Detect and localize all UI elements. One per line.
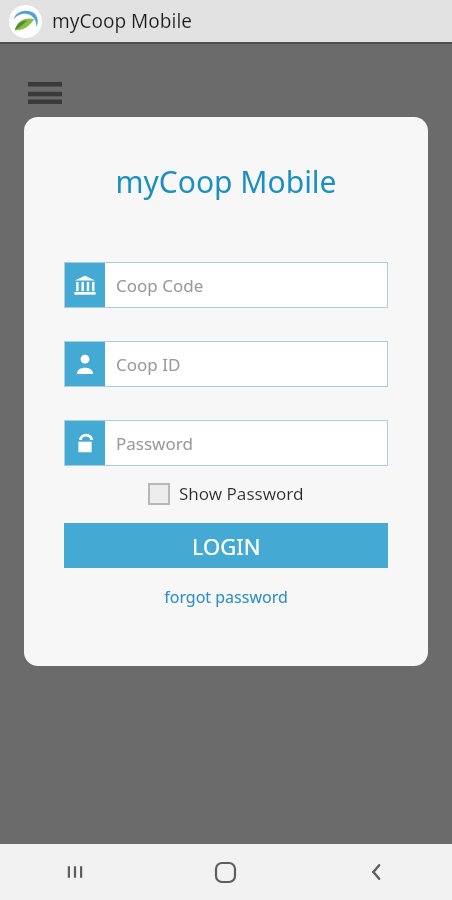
button[interactable]: Recent apps <box>0 844 150 900</box>
staticText: Show Password <box>179 482 304 505</box>
button[interactable]: Back <box>301 844 452 900</box>
button[interactable]: forgot password <box>24 586 428 608</box>
staticText: myCoop Mobile <box>52 8 193 34</box>
button[interactable]: Coop Code <box>64 262 388 308</box>
button[interactable]: LOGIN <box>64 523 388 568</box>
staticText: Coop ID <box>116 353 181 376</box>
staticText: Coop Code <box>116 274 204 297</box>
staticText: LOGIN <box>192 531 261 561</box>
staticText: Password <box>116 432 193 455</box>
button[interactable]: Password <box>64 420 388 466</box>
button[interactable]: Coop ID <box>64 341 388 387</box>
button[interactable]: Show Password <box>148 482 304 505</box>
staticText: myCoop Mobile <box>24 161 428 202</box>
button[interactable]: Menu <box>22 70 68 116</box>
button[interactable]: Home <box>150 844 301 900</box>
